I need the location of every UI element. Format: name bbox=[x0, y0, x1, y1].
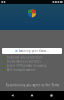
staticText: By continuing you agree to the Terms bbox=[5, 83, 58, 87]
button[interactable]: Home bbox=[25, 91, 39, 100]
button[interactable]: Recent apps bbox=[44, 91, 58, 100]
staticText: Blocks malicious websites bbox=[6, 60, 40, 63]
staticText: Scanning your device… bbox=[19, 49, 49, 53]
staticText: Secure VPN private browsing bbox=[6, 64, 46, 67]
button[interactable]: Back bbox=[5, 91, 19, 100]
staticText: Real-time virus protection bbox=[6, 56, 42, 59]
staticText: Wi-Fi network scanner bbox=[6, 68, 35, 72]
